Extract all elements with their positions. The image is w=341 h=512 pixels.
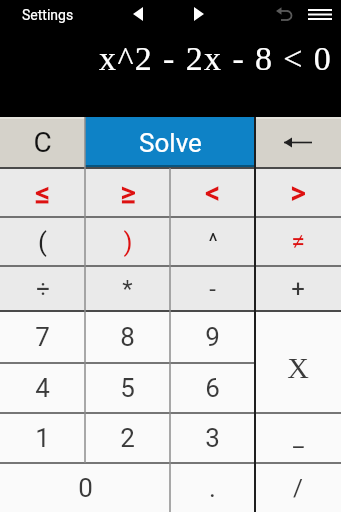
button[interactable]: ≤ xyxy=(0,168,85,217)
staticText: ^ xyxy=(208,229,218,255)
button[interactable] xyxy=(125,3,151,25)
button[interactable]: 9 xyxy=(170,311,255,363)
staticText: ÷ xyxy=(36,275,50,303)
staticText: Settings xyxy=(22,7,74,23)
button[interactable]: Settings xyxy=(22,5,92,25)
button[interactable]: 4 xyxy=(0,363,85,413)
staticText: 3 xyxy=(205,423,220,453)
staticText: 4 xyxy=(35,373,50,403)
button[interactable]: . xyxy=(170,463,255,512)
button[interactable]: _ xyxy=(255,413,341,463)
staticText: > xyxy=(290,176,306,210)
button[interactable]: 7 xyxy=(0,311,85,363)
button[interactable]: 2 xyxy=(85,413,170,463)
button[interactable]: + xyxy=(255,266,341,311)
staticText: X xyxy=(287,351,309,384)
button[interactable]: Solve xyxy=(85,117,255,168)
staticText: + xyxy=(291,275,305,303)
button[interactable]: ^ xyxy=(170,217,255,266)
button[interactable]: 6 xyxy=(170,363,255,413)
button[interactable]: / xyxy=(255,463,341,512)
button[interactable]: 0 xyxy=(0,463,170,512)
staticText: 8 xyxy=(120,322,135,352)
staticText: 2 xyxy=(120,423,135,453)
staticText: ) xyxy=(123,227,133,257)
button[interactable]: 5 xyxy=(85,363,170,413)
staticText: ≥ xyxy=(120,176,136,210)
button[interactable]: X xyxy=(255,311,341,413)
button[interactable]: C xyxy=(0,117,85,168)
staticText: _ xyxy=(293,424,304,452)
button[interactable]: * xyxy=(85,266,170,311)
button[interactable] xyxy=(304,4,336,24)
button[interactable]: - xyxy=(170,266,255,311)
staticText: C xyxy=(33,126,52,159)
staticText: 7 xyxy=(35,322,50,352)
staticText: 1 xyxy=(35,423,50,453)
button[interactable]: < xyxy=(170,168,255,217)
button[interactable]: 8 xyxy=(85,311,170,363)
staticText: * xyxy=(122,275,133,303)
staticText: 5 xyxy=(120,373,135,403)
button[interactable]: ) xyxy=(85,217,170,266)
button[interactable]: ( xyxy=(0,217,85,266)
button[interactable]: ≠ xyxy=(255,217,341,266)
button[interactable]: > xyxy=(255,168,341,217)
button[interactable]: 3 xyxy=(170,413,255,463)
staticText: x^2 - 2x - 8 < 0 xyxy=(99,40,333,78)
staticText: Solve xyxy=(139,128,202,158)
staticText: - xyxy=(209,275,216,303)
staticText: ( xyxy=(38,227,47,257)
staticText: 0 xyxy=(78,473,93,503)
button[interactable]: 1 xyxy=(0,413,85,463)
button[interactable] xyxy=(255,117,341,168)
button[interactable] xyxy=(270,2,296,26)
button[interactable] xyxy=(186,3,212,25)
button[interactable]: ÷ xyxy=(0,266,85,311)
staticText: 6 xyxy=(205,373,220,403)
staticText: ≤ xyxy=(35,176,50,210)
button[interactable]: ≥ xyxy=(85,168,170,217)
staticText: ≠ xyxy=(291,227,305,256)
staticText: . xyxy=(209,473,216,503)
staticText: / xyxy=(293,474,303,502)
staticText: 9 xyxy=(205,322,220,352)
staticText: < xyxy=(205,176,220,210)
